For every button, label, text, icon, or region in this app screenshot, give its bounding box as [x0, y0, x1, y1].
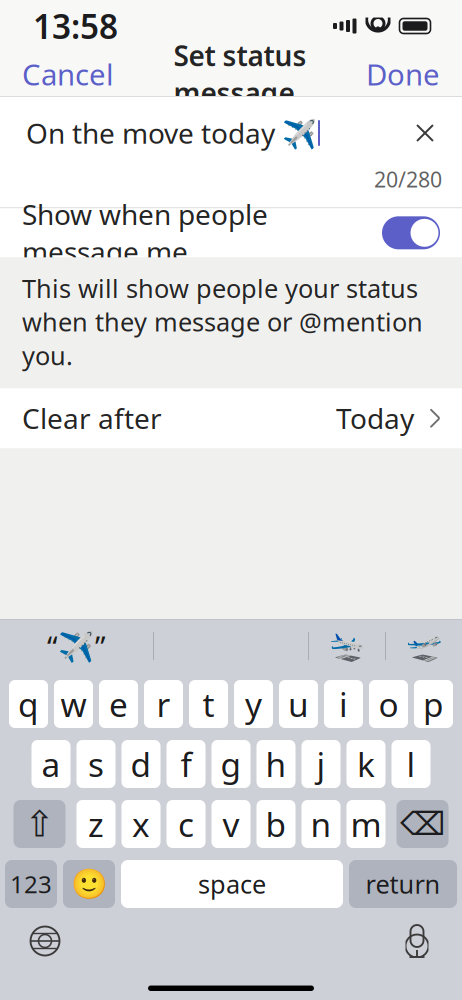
staticText: m — [350, 802, 381, 846]
staticText: w — [60, 682, 86, 726]
button[interactable]: Departing airplane emoji — [386, 624, 462, 668]
staticText: c — [178, 802, 194, 846]
staticText: b — [265, 802, 286, 846]
staticText: Today — [336, 400, 414, 437]
button[interactable]: z — [76, 800, 115, 848]
staticText: Show when people message me — [22, 196, 268, 270]
button[interactable]: e — [99, 680, 138, 728]
staticText: j — [316, 742, 325, 786]
staticText: n — [310, 802, 331, 846]
button[interactable]: Clear text — [405, 113, 445, 153]
staticText: s — [88, 742, 104, 786]
staticText: return — [365, 867, 440, 901]
button[interactable]: y — [234, 680, 273, 728]
button[interactable]: Done — [348, 46, 458, 101]
staticText: 🛬 — [328, 629, 365, 663]
button[interactable]: s — [76, 740, 115, 788]
button[interactable]: f — [166, 740, 205, 788]
staticText: x — [132, 802, 150, 846]
button[interactable]: Cancel — [4, 46, 132, 101]
button[interactable]: h — [256, 740, 295, 788]
staticText: space — [198, 867, 266, 901]
button[interactable]: Airplane emoji suggestion — [0, 624, 153, 668]
button[interactable]: t — [189, 680, 228, 728]
button[interactable]: Show when people message me — [0, 208, 462, 257]
staticText: This will show people your status when t… — [22, 271, 423, 372]
staticText: l — [406, 742, 415, 786]
staticText: u — [288, 682, 309, 726]
staticText: q — [18, 682, 39, 726]
button[interactable]: i — [324, 680, 363, 728]
button[interactable]: 123 — [5, 860, 57, 908]
staticText: ⌫ — [400, 806, 445, 842]
button[interactable]: Dictation — [394, 918, 440, 964]
button[interactable]: u — [279, 680, 318, 728]
button[interactable]: p — [414, 680, 453, 728]
button[interactable]: n — [301, 800, 340, 848]
button[interactable]: Landing airplane emoji — [309, 624, 385, 668]
staticText: p — [423, 682, 444, 726]
button[interactable]: a — [31, 740, 70, 788]
button[interactable]: c — [166, 800, 205, 848]
staticText: v — [222, 802, 239, 846]
staticText: k — [357, 742, 375, 786]
button[interactable]: r — [144, 680, 183, 728]
staticText: d — [130, 742, 151, 786]
button[interactable]: k — [346, 740, 385, 788]
button[interactable]: l — [391, 740, 430, 788]
button[interactable]: Delete — [396, 800, 448, 848]
button[interactable]: space — [121, 860, 343, 908]
staticText: f — [180, 742, 191, 786]
staticText: i — [339, 682, 348, 726]
button[interactable]: g — [211, 740, 250, 788]
staticText: 13:58 — [33, 4, 118, 48]
button[interactable]: Emoji keyboard — [63, 860, 115, 908]
staticText: g — [220, 742, 241, 786]
staticText: 123 — [10, 868, 52, 900]
staticText: z — [88, 802, 104, 846]
staticText: o — [378, 682, 398, 726]
staticText: On the move today ✈️ — [26, 114, 317, 152]
staticText: r — [156, 682, 170, 726]
staticText: Done — [366, 54, 440, 93]
staticText: y — [245, 682, 262, 726]
button[interactable]: v — [211, 800, 250, 848]
button[interactable]: w — [54, 680, 93, 728]
button[interactable]: o — [369, 680, 408, 728]
staticText: 🛫 — [405, 629, 442, 663]
staticText: Cancel — [22, 54, 114, 93]
staticText: “✈️” — [47, 626, 106, 665]
staticText: t — [202, 682, 214, 726]
button[interactable]: m — [346, 800, 385, 848]
button[interactable]: Next keyboard — [22, 918, 68, 964]
button[interactable]: q — [9, 680, 48, 728]
button[interactable]: Shift — [13, 800, 65, 848]
button[interactable]: b — [256, 800, 295, 848]
staticText: 🙂 — [70, 867, 107, 901]
staticText: Set status message — [173, 37, 306, 111]
staticText: Clear after — [22, 400, 162, 437]
button[interactable]: j — [301, 740, 340, 788]
button[interactable]: return — [349, 860, 457, 908]
staticText: ⇧ — [24, 804, 54, 844]
button[interactable]: Clear after — [0, 388, 462, 448]
staticText: h — [265, 742, 286, 786]
button[interactable]: d — [121, 740, 160, 788]
staticText: e — [109, 682, 128, 726]
button[interactable]: x — [121, 800, 160, 848]
staticText: 20/280 — [374, 165, 442, 193]
staticText: a — [41, 742, 60, 786]
